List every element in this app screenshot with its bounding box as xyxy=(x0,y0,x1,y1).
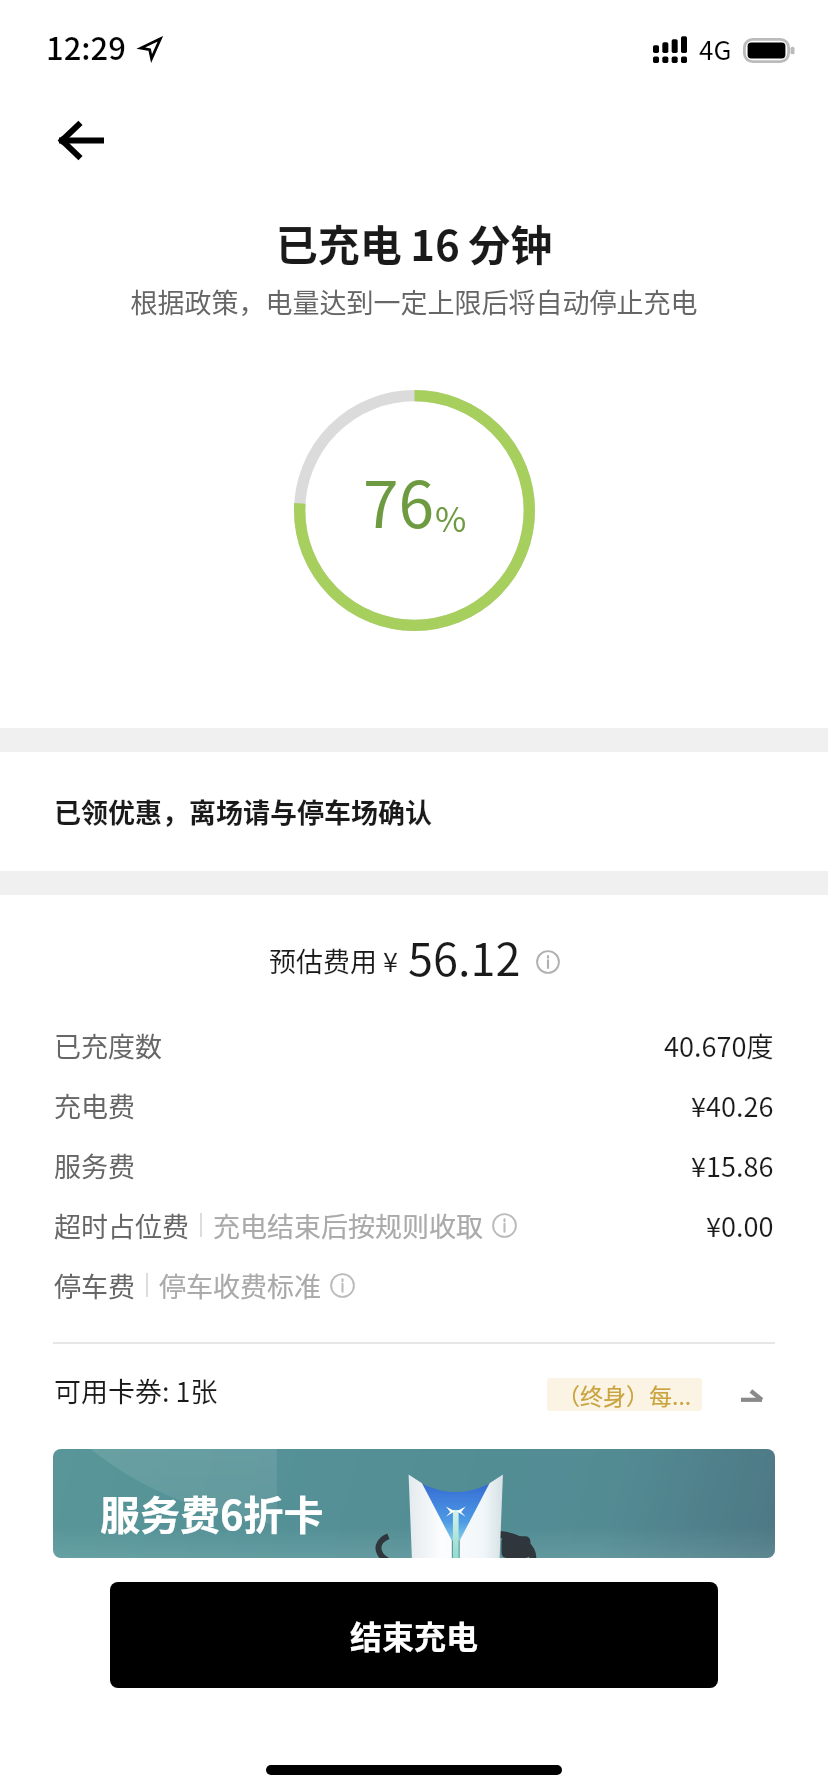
staticText: 服务费6折卡 xyxy=(100,1484,324,1542)
staticText: 4G xyxy=(699,30,732,68)
button[interactable]: 结束充电 xyxy=(110,1582,718,1688)
staticText: 超时占位费 xyxy=(54,1206,189,1245)
staticText: 已领优惠，离场请与停车场确认 xyxy=(54,792,432,831)
staticText: 停车费 xyxy=(54,1266,135,1305)
staticText: 已充电 16 分钟 xyxy=(0,212,828,273)
staticText: 已充度数 xyxy=(54,1026,162,1065)
staticText: % xyxy=(435,493,467,542)
staticText: ¥0.00 xyxy=(706,1206,774,1245)
staticText: 停车收费标准 xyxy=(159,1266,321,1305)
staticText: 服务费 xyxy=(54,1146,135,1185)
button[interactable]: 已领优惠，离场请与停车场确认 xyxy=(0,752,828,871)
button[interactable]: 服务费6折卡 xyxy=(53,1449,775,1558)
staticText: 76 xyxy=(363,454,435,547)
staticText: 预估费用 ¥ xyxy=(269,941,399,980)
staticText: 充电结束后按规则收取 xyxy=(213,1206,483,1245)
staticText: 充电费 xyxy=(54,1086,135,1125)
staticText: 可用卡券: 1张 xyxy=(54,1371,218,1410)
staticText: 结束充电 xyxy=(350,1612,479,1658)
staticText: ¥40.26 xyxy=(691,1086,774,1125)
staticText: （终身）每... xyxy=(557,1378,692,1411)
button[interactable]: Back xyxy=(44,104,116,176)
staticText: 根据政策，电量达到一定上限后将自动停止充电 xyxy=(0,282,828,321)
staticText: 56.12 xyxy=(408,924,521,989)
staticText: 40.670度 xyxy=(664,1026,774,1065)
staticText: ¥15.86 xyxy=(691,1146,774,1185)
staticText: 12:29 xyxy=(46,24,126,69)
button[interactable]: 可用卡券: 1张 xyxy=(0,1344,828,1436)
